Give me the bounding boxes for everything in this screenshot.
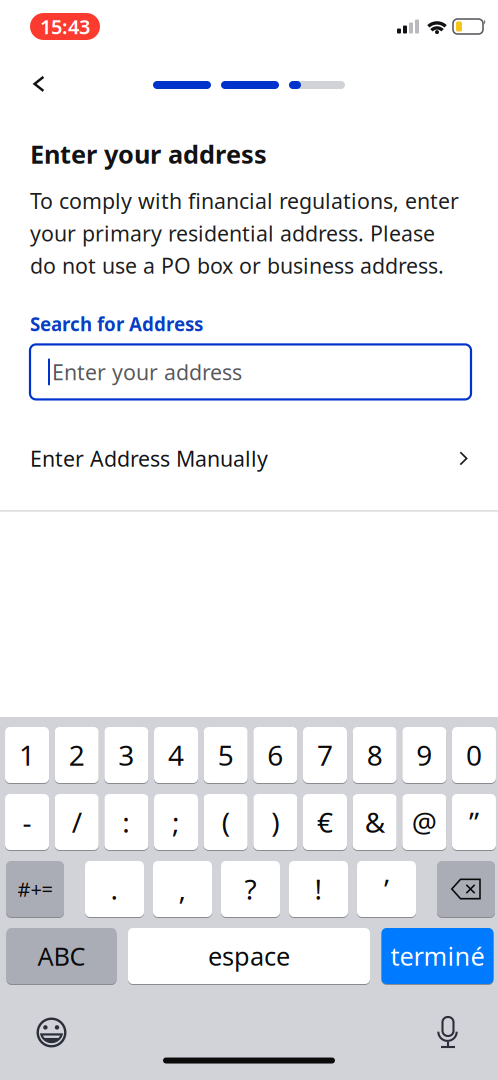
- button[interactable]: Delete: [437, 860, 495, 917]
- staticText: .: [110, 870, 118, 908]
- staticText: /: [72, 803, 82, 841]
- button[interactable]: 4: [154, 726, 198, 783]
- button[interactable]: Back: [0, 62, 79, 104]
- staticText: 0: [466, 736, 482, 774]
- button[interactable]: -: [5, 793, 49, 850]
- button[interactable]: !: [289, 860, 348, 917]
- button[interactable]: #+=: [6, 860, 64, 917]
- button[interactable]: ’: [357, 860, 416, 917]
- staticText: ,: [178, 870, 186, 908]
- button[interactable]: 5: [204, 726, 248, 783]
- button[interactable]: ?: [221, 860, 280, 917]
- staticText: 9: [416, 736, 432, 774]
- button[interactable]: ;: [154, 793, 198, 850]
- button[interactable]: Dictate: [436, 1016, 498, 1048]
- staticText: Search for Address: [30, 312, 203, 336]
- staticText: :: [122, 803, 130, 841]
- staticText: Enter Address Manually: [30, 444, 268, 473]
- staticText: Enter your address: [52, 358, 242, 386]
- button[interactable]: 0: [452, 726, 496, 783]
- button[interactable]: :: [104, 793, 148, 850]
- staticText: !: [314, 870, 322, 908]
- staticText: ”: [469, 803, 479, 841]
- staticText: €: [317, 803, 333, 841]
- staticText: (: [222, 803, 230, 841]
- staticText: 1: [19, 736, 35, 774]
- button[interactable]: ABC: [6, 927, 116, 984]
- button[interactable]: (: [204, 793, 248, 850]
- staticText: 5: [218, 736, 234, 774]
- staticText: &: [365, 803, 385, 841]
- button[interactable]: terminé: [381, 927, 493, 984]
- staticText: terminé: [390, 939, 484, 973]
- staticText: ABC: [37, 939, 85, 973]
- staticText: #+=: [17, 876, 52, 902]
- staticText: ?: [244, 870, 256, 908]
- button[interactable]: 2: [55, 726, 99, 783]
- button[interactable]: &: [353, 793, 397, 850]
- button[interactable]: Enter Address Manually: [0, 427, 498, 489]
- button[interactable]: /: [55, 793, 99, 850]
- staticText: espace: [208, 939, 290, 973]
- staticText: 8: [367, 736, 383, 774]
- staticText: 2: [69, 736, 85, 774]
- button[interactable]: Emoji: [0, 1017, 67, 1048]
- staticText: 7: [317, 736, 333, 774]
- button[interactable]: 3: [104, 726, 148, 783]
- button[interactable]: espace: [128, 927, 370, 984]
- staticText: 4: [168, 736, 184, 774]
- staticText: 3: [118, 736, 134, 774]
- button[interactable]: 7: [303, 726, 347, 783]
- staticText: @: [412, 803, 437, 841]
- button[interactable]: ,: [153, 860, 212, 917]
- staticText: -: [22, 803, 31, 841]
- button[interactable]: 9: [402, 726, 446, 783]
- staticText: ;: [172, 803, 180, 841]
- button[interactable]: ): [253, 793, 297, 850]
- button[interactable]: 6: [253, 726, 297, 783]
- button[interactable]: €: [303, 793, 347, 850]
- button[interactable]: 8: [353, 726, 397, 783]
- button[interactable]: 1: [5, 726, 49, 783]
- button[interactable]: ”: [452, 793, 496, 850]
- staticText: 15:43: [40, 13, 90, 40]
- staticText: ’: [384, 870, 389, 908]
- button[interactable]: @: [402, 793, 446, 850]
- staticText: 6: [267, 736, 283, 774]
- button[interactable]: .: [85, 860, 144, 917]
- staticText: Enter your address: [30, 137, 267, 171]
- staticText: To comply with financial regulations, en…: [30, 187, 459, 280]
- button[interactable]: Enter your address: [30, 344, 471, 399]
- staticText: ): [271, 803, 279, 841]
